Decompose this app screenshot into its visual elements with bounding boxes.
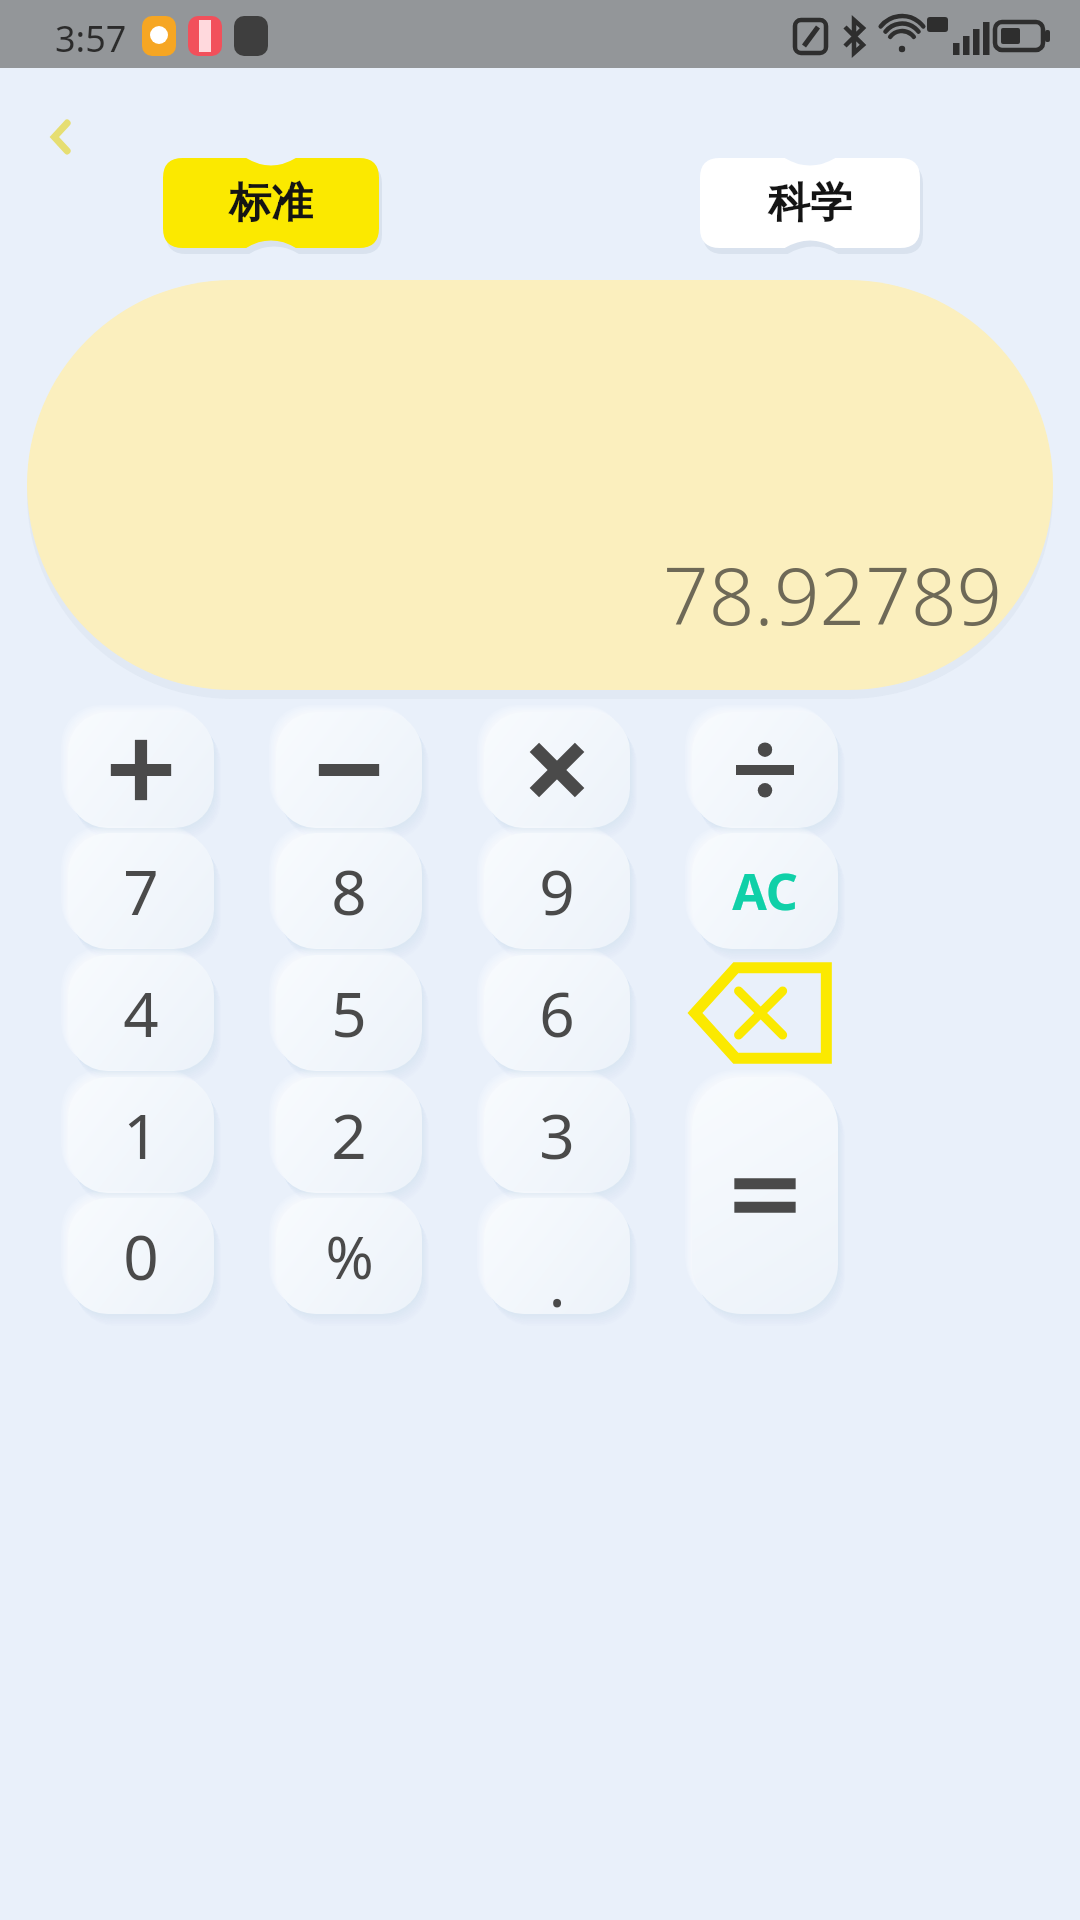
staticText: 6 xyxy=(539,971,575,1055)
staticText: 8 xyxy=(331,849,367,933)
button[interactable]: % xyxy=(276,1198,422,1314)
staticText: % xyxy=(325,1217,374,1296)
button[interactable]: 2 xyxy=(276,1077,422,1193)
button[interactable]: 0 xyxy=(68,1198,214,1314)
staticText: 9 xyxy=(539,849,575,933)
button[interactable]: 7 xyxy=(68,833,214,949)
button[interactable]: Equals xyxy=(692,1077,838,1314)
staticText: 标准 xyxy=(229,177,313,230)
button[interactable]: 5 xyxy=(276,955,422,1071)
button[interactable]: Divide xyxy=(692,712,838,828)
staticText: 78.92789 xyxy=(663,539,1003,648)
button[interactable]: Multiply xyxy=(484,712,630,828)
staticText: 4 xyxy=(123,971,159,1055)
button[interactable]: 8 xyxy=(276,833,422,949)
staticText: 2 xyxy=(331,1093,367,1177)
button[interactable]: 6 xyxy=(484,955,630,1071)
button[interactable]: Plus xyxy=(68,712,214,828)
button[interactable]: 科学 xyxy=(700,158,920,248)
button[interactable]: AC xyxy=(692,833,838,949)
button[interactable]: 1 xyxy=(68,1077,214,1193)
button[interactable]: 9 xyxy=(484,833,630,949)
button[interactable]: 3 xyxy=(484,1077,630,1193)
staticText: AC xyxy=(732,857,798,925)
button[interactable]: 标准 xyxy=(163,158,379,248)
staticText: 5 xyxy=(331,971,367,1055)
button[interactable]: Minus xyxy=(276,712,422,828)
button[interactable]: Back xyxy=(30,108,88,166)
button[interactable]: 4 xyxy=(68,955,214,1071)
staticText: 3:57 xyxy=(55,14,127,63)
staticText: 0 xyxy=(123,1214,159,1298)
button[interactable]: . xyxy=(484,1198,630,1314)
staticText: 科学 xyxy=(768,177,852,230)
staticText: 7 xyxy=(123,849,159,933)
staticText: 3 xyxy=(539,1093,575,1177)
staticText: 1 xyxy=(123,1093,159,1177)
staticText: . xyxy=(548,1239,566,1326)
button[interactable]: Backspace xyxy=(692,955,838,1071)
